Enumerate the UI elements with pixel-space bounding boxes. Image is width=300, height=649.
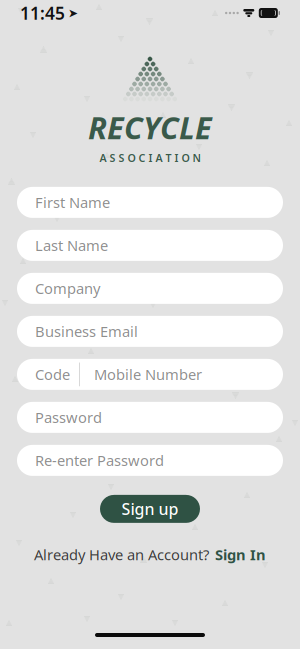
- staticText: Password: [35, 408, 102, 427]
- staticText: Code: [35, 365, 70, 384]
- button[interactable]: Sign In: [215, 545, 266, 564]
- button[interactable]: Last Name: [17, 230, 283, 261]
- button[interactable]: First Name: [17, 187, 283, 218]
- staticText: First Name: [35, 193, 110, 212]
- button[interactable]: Password: [17, 402, 283, 433]
- staticText: Mobile Number: [94, 365, 202, 384]
- staticText: 11:45: [20, 1, 65, 24]
- staticText: Sign In: [215, 545, 266, 564]
- staticText: Already Have an Account?: [34, 545, 209, 564]
- staticText: Re-enter Password: [35, 451, 164, 470]
- staticText: ➤: [68, 6, 78, 20]
- staticText: Business Email: [35, 322, 138, 341]
- button[interactable]: Code: [17, 359, 283, 390]
- button[interactable]: Re-enter Password: [17, 445, 283, 476]
- button[interactable]: Business Email: [17, 316, 283, 347]
- staticText: RECYCLE: [88, 107, 212, 148]
- staticText: Sign up: [121, 498, 178, 519]
- staticText: Company: [35, 279, 100, 298]
- staticText: Last Name: [35, 236, 108, 255]
- staticText: A S S O C I A T I O N: [99, 151, 200, 165]
- button[interactable]: Company: [17, 273, 283, 304]
- button[interactable]: Sign up: [100, 495, 200, 523]
